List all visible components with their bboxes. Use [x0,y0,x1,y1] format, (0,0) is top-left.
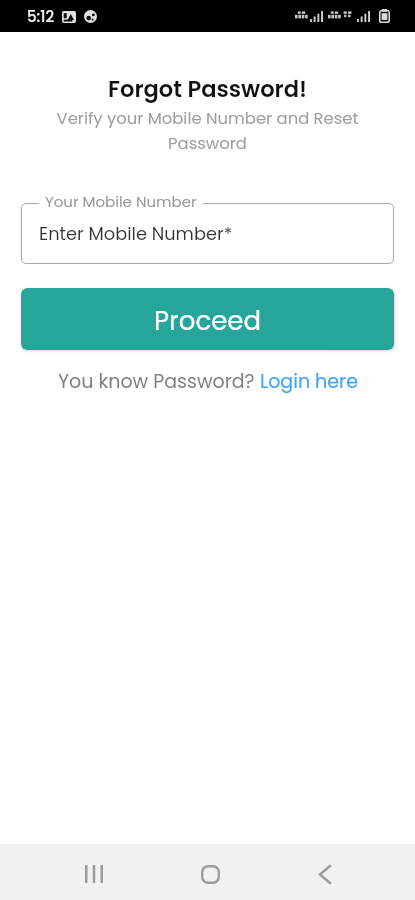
staticText: Enter Mobile Number* [39,221,233,246]
staticText: Forgot Password! [0,73,415,105]
staticText: 5:12 [27,6,55,27]
staticText: Proceed [154,303,261,339]
button[interactable]: Home [184,848,236,900]
staticText: Verify your Mobile Number and Reset Pass… [40,107,375,154]
staticText: You know Password? [58,368,260,395]
staticText: Login here [260,368,358,395]
button[interactable]: Recent apps [68,848,120,900]
button[interactable]: Login here [260,368,358,395]
button[interactable]: Enter Mobile Number* [21,203,394,264]
button[interactable]: Proceed [21,288,394,350]
button[interactable]: Back [299,848,351,900]
staticText: Your Mobile Number [45,191,197,212]
